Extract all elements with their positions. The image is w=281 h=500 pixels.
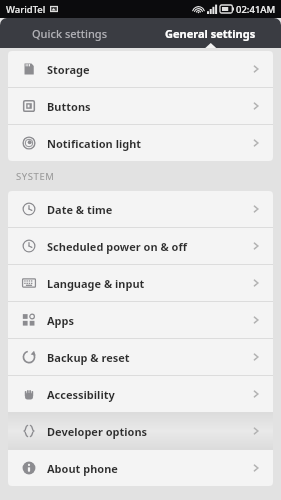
button[interactable]: Language & input <box>8 265 273 301</box>
button[interactable]: Quick settings <box>0 18 140 48</box>
staticText: General settings <box>165 26 256 41</box>
staticText: Backup & reset <box>47 350 130 365</box>
staticText: Quick settings <box>32 26 108 41</box>
staticText: SYSTEM <box>16 170 55 183</box>
button[interactable]: General settings <box>140 18 281 48</box>
staticText: Notification light <box>47 136 142 151</box>
staticText: Accessibility <box>47 387 115 402</box>
button[interactable]: Apps <box>8 302 273 338</box>
staticText: WaridTel <box>6 3 46 16</box>
button[interactable]: Accessibility <box>8 376 273 412</box>
staticText: Language & input <box>47 276 145 291</box>
staticText: About phone <box>47 461 118 476</box>
staticText: Apps <box>47 313 75 328</box>
button[interactable]: Scheduled power on & off <box>8 228 273 264</box>
staticText: 02:41AM <box>236 3 276 16</box>
staticText: Date & time <box>47 202 113 217</box>
staticText: Buttons <box>47 99 91 114</box>
button[interactable]: Buttons <box>8 88 273 124</box>
button[interactable]: Notification light <box>8 125 273 161</box>
staticText: Scheduled power on & off <box>47 239 187 254</box>
staticText: Storage <box>47 62 90 77</box>
staticText: Developer options <box>47 424 148 439</box>
button[interactable]: Date & time <box>8 191 273 227</box>
button[interactable]: Developer options <box>8 413 273 449</box>
button[interactable]: Backup & reset <box>8 339 273 375</box>
button[interactable]: About phone <box>8 450 273 486</box>
button[interactable]: Storage <box>8 51 273 87</box>
